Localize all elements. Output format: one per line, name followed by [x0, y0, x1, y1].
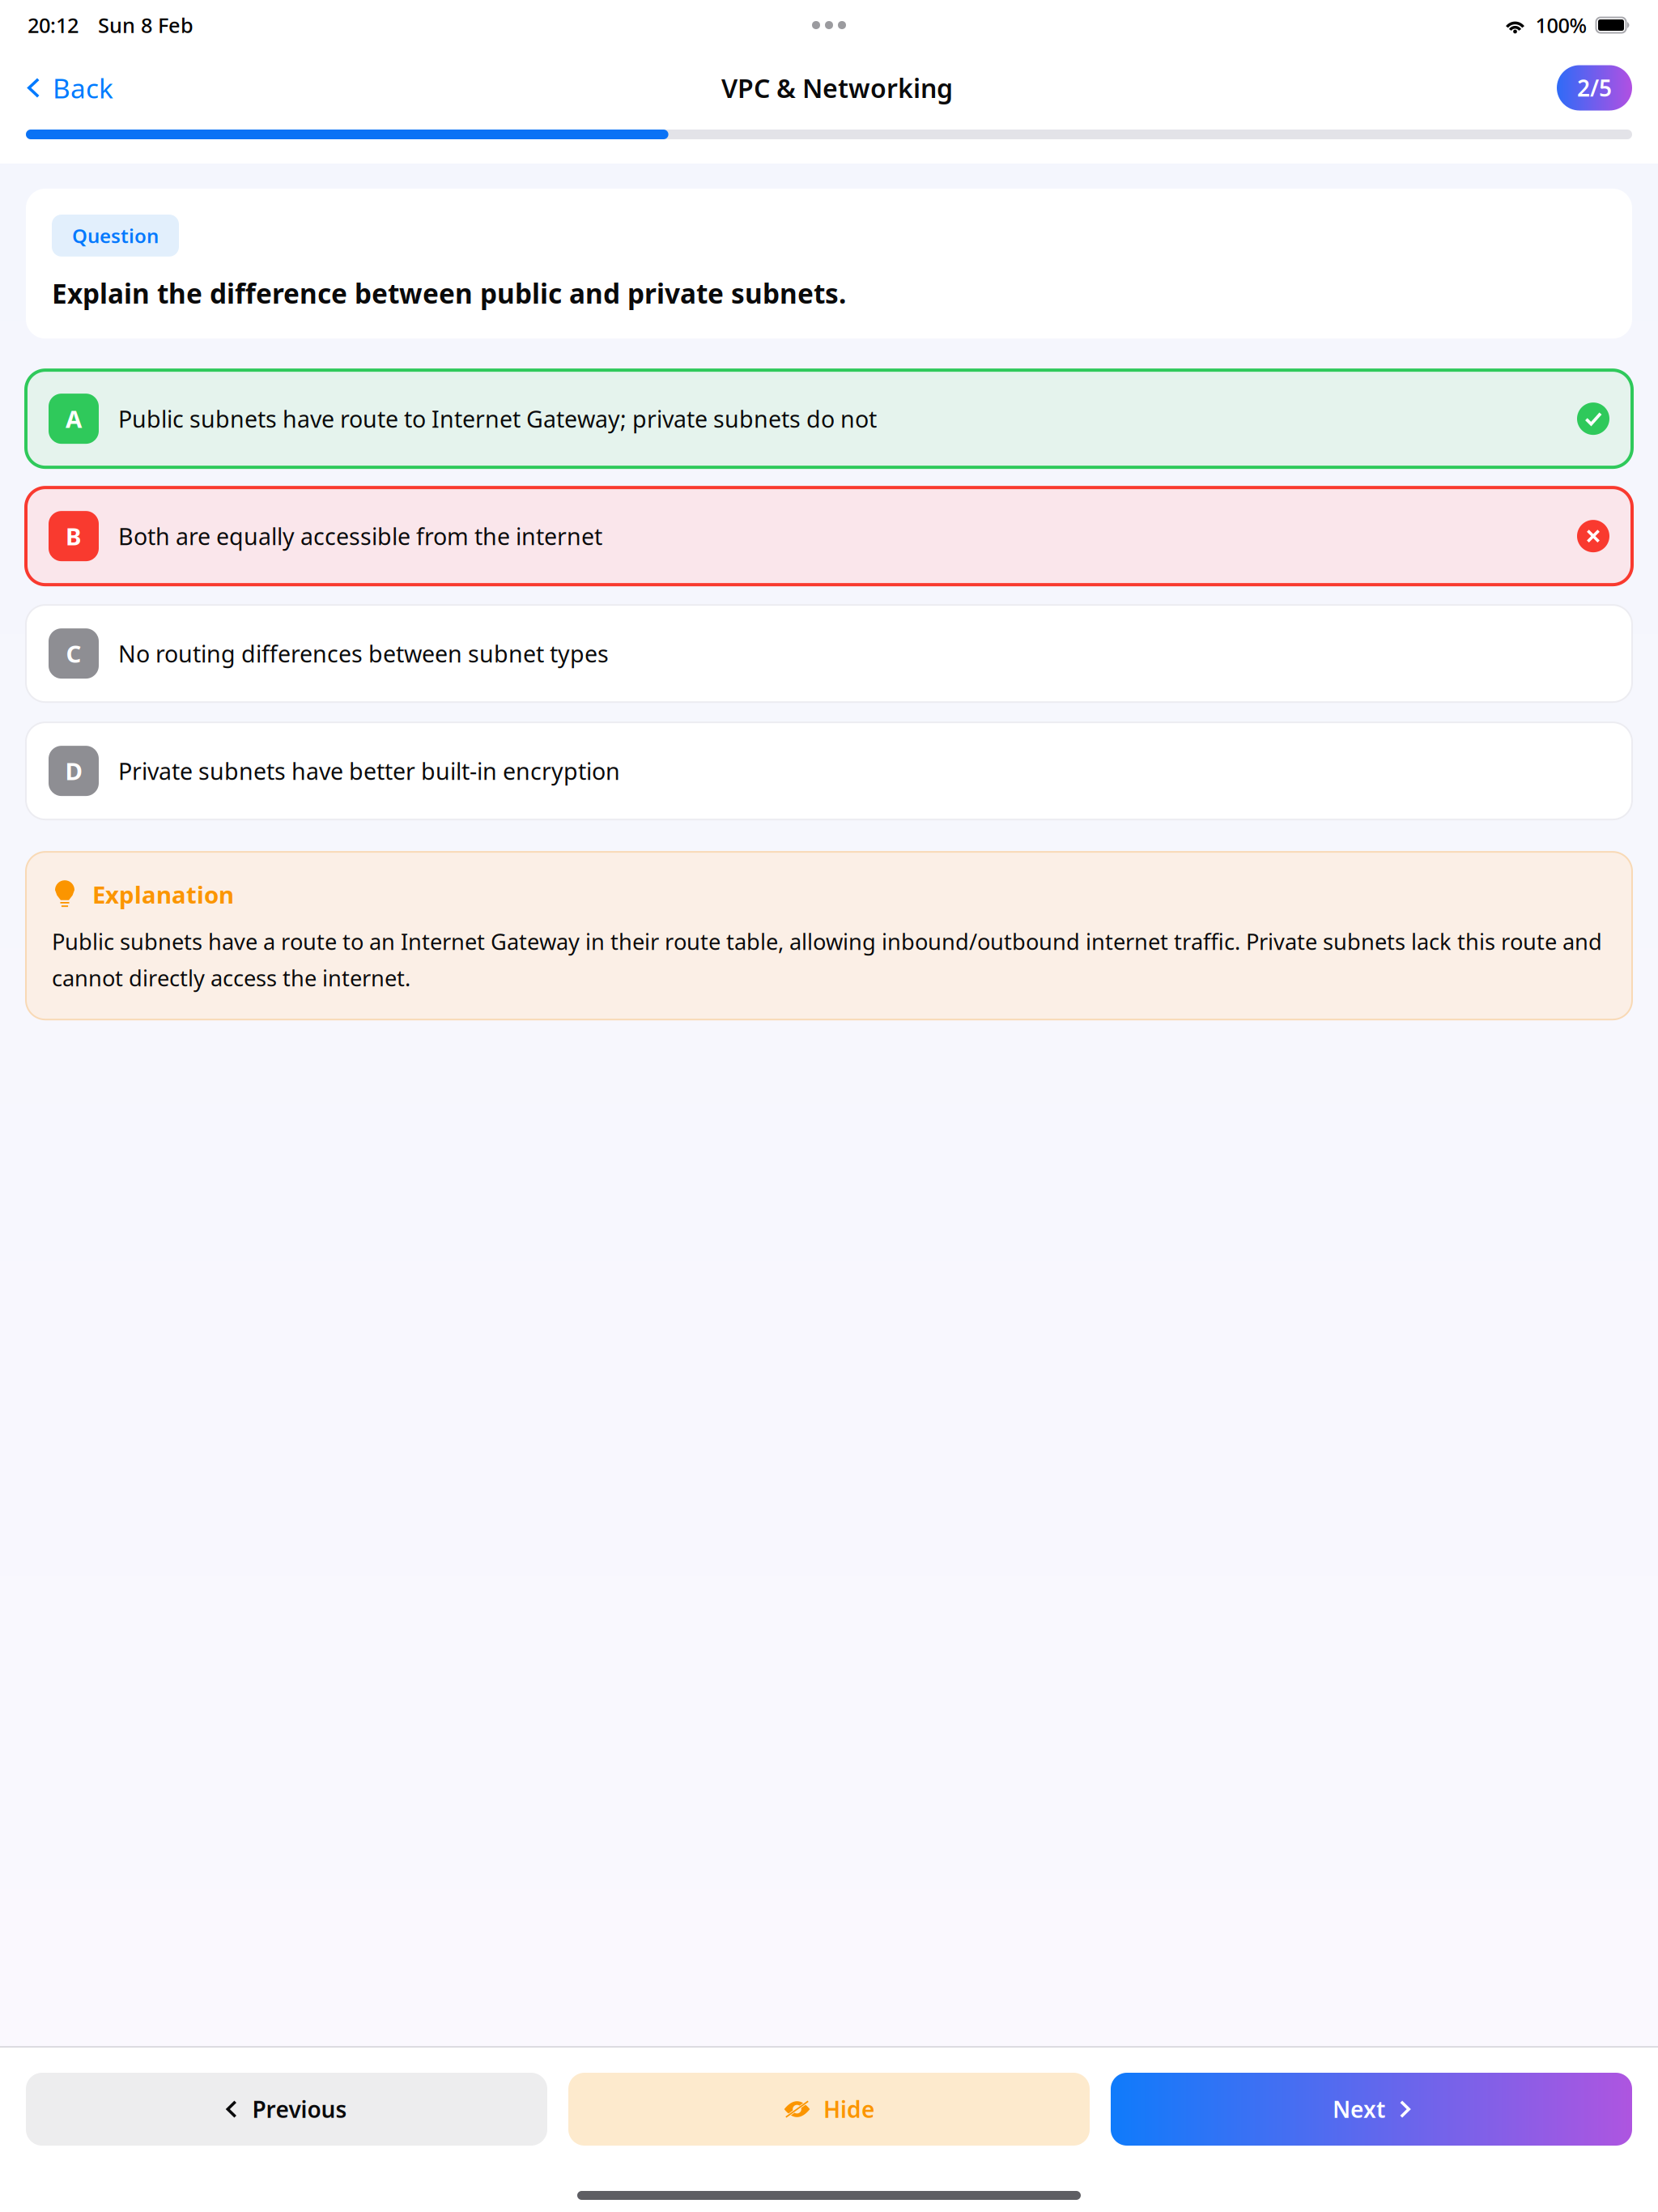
staticText: Back: [53, 70, 113, 106]
staticText: Explanation: [92, 879, 234, 910]
staticText: 100%: [1535, 11, 1587, 39]
button[interactable]: 2/5: [1557, 65, 1632, 111]
button[interactable]: D: [26, 722, 1632, 819]
staticText: No routing differences between subnet ty…: [118, 638, 609, 669]
button[interactable]: B: [26, 487, 1632, 585]
button[interactable]: Hide: [568, 2073, 1090, 2146]
button[interactable]: Previous: [26, 2073, 547, 2146]
staticText: Sun 8 Feb: [98, 11, 193, 39]
staticText: Private subnets have better built-in enc…: [118, 755, 620, 787]
staticText: A: [66, 403, 82, 435]
button[interactable]: C: [26, 605, 1632, 702]
staticText: B: [66, 520, 82, 552]
staticText: Explain the difference between public an…: [52, 275, 846, 311]
staticText: Next: [1333, 2094, 1385, 2124]
staticText: Hide: [823, 2094, 874, 2124]
button[interactable]: A: [26, 370, 1632, 467]
staticText: Public subnets have a route to an Intern…: [52, 926, 1602, 993]
button[interactable]: Next: [1111, 2073, 1632, 2146]
staticText: Question: [72, 223, 159, 248]
staticText: Both are equally accessible from the int…: [118, 520, 602, 552]
staticText: C: [66, 638, 81, 669]
staticText: 2/5: [1577, 73, 1612, 103]
button[interactable]: Back: [26, 62, 115, 114]
staticText: 20:12: [28, 11, 79, 39]
staticText: VPC & Networking: [721, 71, 953, 105]
staticText: D: [65, 755, 82, 787]
staticText: Previous: [252, 2094, 347, 2124]
staticText: Public subnets have route to Internet Ga…: [118, 403, 877, 434]
